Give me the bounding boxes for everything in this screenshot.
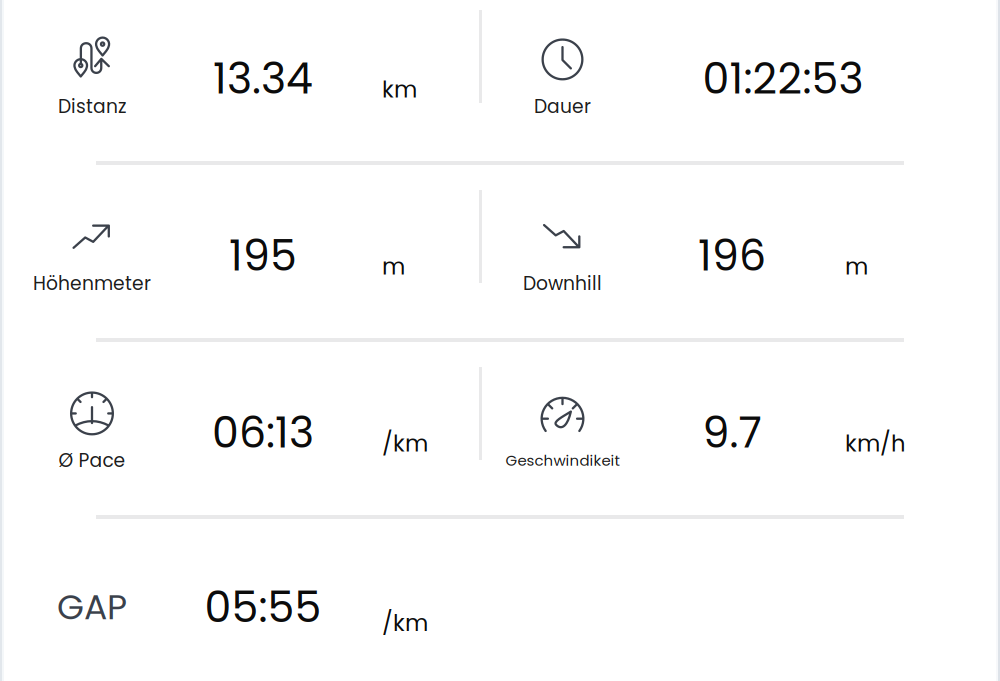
button[interactable]: GAP 5 Minuten 55 pro Kilometer [0, 519, 1000, 681]
button[interactable]: Distanz 13,34 Kilometer [0, 37, 479, 119]
staticText: 01:22:53 [702, 49, 863, 108]
staticText: Höhenmeter [33, 270, 151, 296]
staticText: Ø Pace [58, 447, 125, 473]
button[interactable]: Dauer 1 Stunde 22 Minuten 53 Sekunden [482, 37, 1000, 119]
button[interactable]: Durchschnittliche Pace 6 Minuten 13 pro … [0, 391, 479, 473]
button[interactable]: Downhill 196 Meter [482, 214, 1000, 296]
staticText: 195 [229, 226, 297, 285]
staticText: Geschwindikeit [505, 450, 619, 471]
staticText: m [845, 251, 868, 282]
staticText: km [382, 74, 417, 105]
staticText: 9.7 [702, 403, 761, 462]
staticText: 06:13 [212, 403, 314, 462]
staticText: /km [382, 428, 428, 459]
staticText: m [382, 251, 405, 282]
staticText: GAP [57, 583, 127, 631]
staticText: Downhill [523, 270, 602, 296]
staticText: 13.34 [213, 49, 313, 108]
staticText: Dauer [534, 93, 591, 119]
button[interactable]: Geschwindigkeit 9,7 Kilometer pro Stunde [482, 394, 1000, 471]
button[interactable]: Höhenmeter 195 Meter [0, 214, 479, 296]
staticText: km/h [845, 428, 906, 459]
staticText: Distanz [58, 93, 126, 119]
staticText: 196 [698, 226, 766, 285]
staticText: /km [382, 607, 428, 639]
staticText: 05:55 [204, 577, 321, 637]
